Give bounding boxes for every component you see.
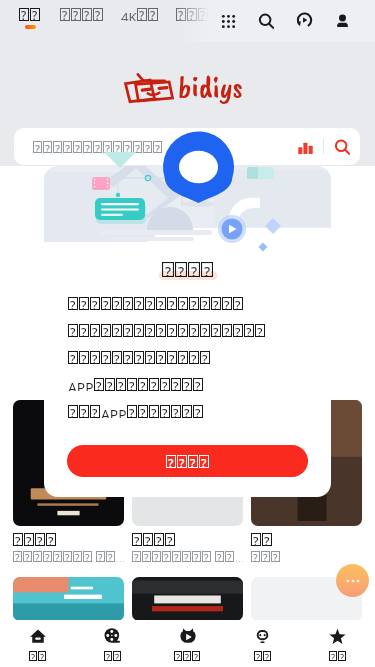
staticText: ? [26, 628, 32, 641]
staticText: ? [213, 297, 219, 310]
staticText: ? [178, 8, 184, 21]
button[interactable]: ? [67, 445, 308, 477]
staticText: ? [45, 551, 50, 562]
staticText: ? [263, 646, 268, 657]
staticText: ? [115, 651, 120, 661]
staticText: ? [158, 324, 164, 337]
staticText: ? [179, 455, 185, 468]
staticText: ? [200, 8, 206, 21]
button[interactable]: ? [19, 0, 41, 29]
staticText: ? [253, 646, 258, 657]
staticText: ? [107, 378, 113, 391]
staticText: ? [174, 551, 179, 562]
button[interactable]: ? [44, 166, 331, 497]
button[interactable]: ? [251, 577, 362, 657]
staticText: ? [37, 533, 43, 546]
button[interactable]: ? [132, 400, 243, 562]
staticText: ? [202, 324, 208, 337]
staticText: ? [114, 297, 120, 310]
button[interactable]: ? [225, 620, 300, 667]
button[interactable]: ? [60, 0, 104, 29]
staticText: bidiys [178, 67, 243, 106]
button[interactable]: ? [13, 577, 124, 657]
staticText: … [116, 646, 124, 657]
staticText: ? [45, 141, 50, 153]
staticText: … [116, 551, 124, 562]
staticText: ? [194, 651, 199, 661]
staticText: ? [151, 405, 157, 418]
staticText: ? [180, 297, 186, 310]
staticText: ? [176, 651, 181, 661]
staticText: … [235, 551, 243, 562]
staticText: ? [135, 141, 140, 153]
button[interactable]: Categories [209, 4, 247, 38]
staticText: ? [173, 405, 179, 418]
button[interactable]: More [336, 564, 369, 597]
button[interactable]: ? [75, 620, 150, 667]
button[interactable]: Ranking [291, 133, 319, 161]
staticText: ? [95, 141, 100, 153]
staticText: ? [162, 378, 168, 391]
staticText: ? [253, 533, 259, 546]
button[interactable]: ? [300, 620, 375, 667]
staticText: ? [180, 324, 186, 337]
staticText: ? [103, 351, 109, 364]
staticText: ? [213, 324, 219, 337]
staticText: ? [15, 533, 21, 546]
staticText: ? [194, 551, 199, 562]
staticText: ? [134, 533, 140, 546]
staticText: ? [48, 533, 54, 546]
button[interactable]: 4K [121, 0, 159, 29]
button[interactable]: ? [14, 128, 360, 165]
staticText: ? [253, 551, 258, 562]
staticText: ? [147, 324, 153, 337]
staticText: ? [81, 324, 87, 337]
staticText: ? [85, 141, 90, 153]
staticText: ? [168, 455, 174, 468]
staticText: ? [150, 8, 156, 21]
button[interactable]: ? [251, 400, 362, 562]
staticText: ? [40, 651, 45, 661]
staticText: ? [169, 297, 175, 310]
staticText: ? [246, 324, 252, 337]
button[interactable]: Profile [323, 4, 361, 38]
staticText: ? [162, 405, 168, 418]
button[interactable]: Search [324, 129, 360, 165]
staticText: ? [169, 351, 175, 364]
button[interactable]: Search [247, 4, 285, 38]
staticText: ? [70, 324, 76, 337]
staticText: ? [189, 8, 195, 21]
staticText: ? [256, 651, 261, 661]
staticText: ? [264, 533, 270, 546]
button[interactable]: ? [0, 620, 75, 667]
button[interactable]: ? [150, 620, 225, 667]
staticText: ? [98, 551, 103, 562]
button[interactable]: ? [176, 0, 209, 29]
staticText: ? [55, 551, 60, 562]
button[interactable]: History [285, 4, 323, 38]
staticText: ? [81, 405, 87, 418]
staticText: ? [253, 628, 259, 641]
staticText: ? [184, 378, 190, 391]
staticText: ? [114, 351, 120, 364]
button[interactable]: ? [13, 400, 124, 562]
staticText: ? [263, 551, 268, 562]
staticText: ? [73, 8, 79, 21]
staticText: ? [235, 324, 241, 337]
staticText: ? [158, 351, 164, 364]
staticText: ? [35, 551, 40, 562]
staticText: ? [165, 262, 172, 277]
button[interactable]: ? [132, 577, 243, 657]
staticText: ? [115, 141, 120, 153]
